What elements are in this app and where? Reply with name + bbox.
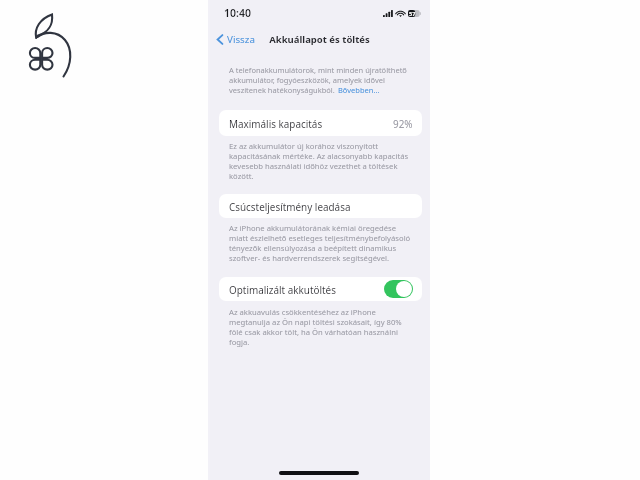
staticText: Csúcsteljesítmény leadása xyxy=(229,200,351,213)
staticText: A telefonakkumulátorok, mint minden újra… xyxy=(229,65,407,75)
button[interactable]: Csúcsteljesítmény leadása xyxy=(219,194,422,218)
staticText: tényezők ellensúlyozása a beépített dina… xyxy=(229,243,397,253)
button[interactable]: Optimalizált akkutöltés bekapcsolva xyxy=(384,280,413,298)
staticText: között. xyxy=(229,171,254,181)
staticText: megtanulja az Ön napi töltési szokásait,… xyxy=(229,317,402,327)
button[interactable]: Vissza xyxy=(214,30,257,49)
staticText: kevesebb használati időhöz vezethet a tö… xyxy=(229,161,398,171)
staticText: Az akkuavulás csökkentéséhez az iPhone xyxy=(229,307,376,317)
button[interactable]: Maximális kapacitás xyxy=(219,110,422,136)
staticText: szoftver- és hardverrendszerek segítségé… xyxy=(229,253,390,263)
staticText: akkumulátor, fogyóeszközök, amelyek időv… xyxy=(229,75,385,85)
staticText: Ez az akkumulátor új korához viszonyítot… xyxy=(229,141,379,151)
staticText: veszítenek hatékonyságukból. xyxy=(229,85,335,95)
staticText: Maximális kapacitás xyxy=(229,117,323,130)
staticText: Vissza xyxy=(227,33,255,46)
staticText: 57 xyxy=(409,10,416,17)
button[interactable]: Optimalizált akkutöltés xyxy=(219,277,422,301)
staticText: Optimalizált akkutöltés xyxy=(229,283,336,296)
staticText: fogja. xyxy=(229,337,250,347)
staticText: 92% xyxy=(393,117,413,130)
staticText: fölé csak akkor tölt, ha Ön várhatóan ha… xyxy=(229,327,398,337)
staticText: Az iPhone akkumulátorának kémiai öregedé… xyxy=(229,223,397,233)
staticText: kapacitásának mértéke. Az alacsonyabb ka… xyxy=(229,151,409,161)
staticText: 10:40 xyxy=(224,6,251,20)
staticText: Akkuállapot és töltés xyxy=(269,33,370,46)
staticText: miatt észlelhető esetleges teljesítményb… xyxy=(229,233,411,243)
button[interactable]: Bővebben… xyxy=(338,85,380,95)
